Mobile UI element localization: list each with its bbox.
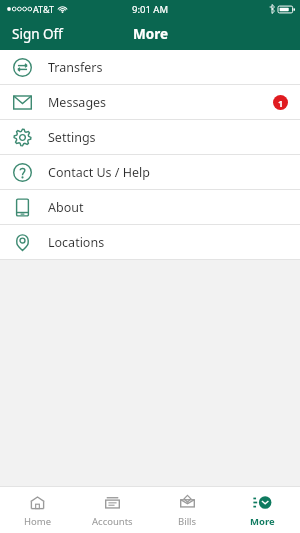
staticText: Transfers — [48, 59, 103, 76]
staticText: 1 — [278, 97, 284, 109]
staticText: Locations — [48, 234, 105, 251]
button[interactable]: Messages — [0, 85, 300, 119]
button[interactable]: Locations — [0, 225, 300, 259]
button[interactable]: Sign Off — [0, 18, 75, 50]
staticText: Home — [24, 515, 52, 528]
button[interactable]: Bills — [150, 487, 225, 533]
staticText: Messages — [48, 94, 107, 111]
staticText: AT&T — [33, 3, 54, 15]
button[interactable]: Transfers — [0, 50, 300, 84]
staticText: About — [48, 199, 84, 216]
staticText: Bills — [178, 515, 197, 528]
button[interactable]: Home — [0, 487, 75, 533]
staticText: More — [250, 515, 275, 528]
button[interactable]: Accounts — [75, 487, 150, 533]
staticText: Settings — [48, 129, 96, 146]
button[interactable]: Settings — [0, 120, 300, 154]
other: More — [253, 493, 272, 512]
button[interactable]: About — [0, 190, 300, 224]
button[interactable]: More — [225, 487, 300, 533]
button[interactable]: Contact Us / Help — [0, 155, 300, 189]
staticText: Sign Off — [12, 25, 63, 43]
staticText: More — [133, 25, 168, 43]
staticText: Accounts — [92, 515, 133, 528]
staticText: Contact Us / Help — [48, 164, 150, 181]
staticText: 9:01 AM — [132, 3, 169, 16]
